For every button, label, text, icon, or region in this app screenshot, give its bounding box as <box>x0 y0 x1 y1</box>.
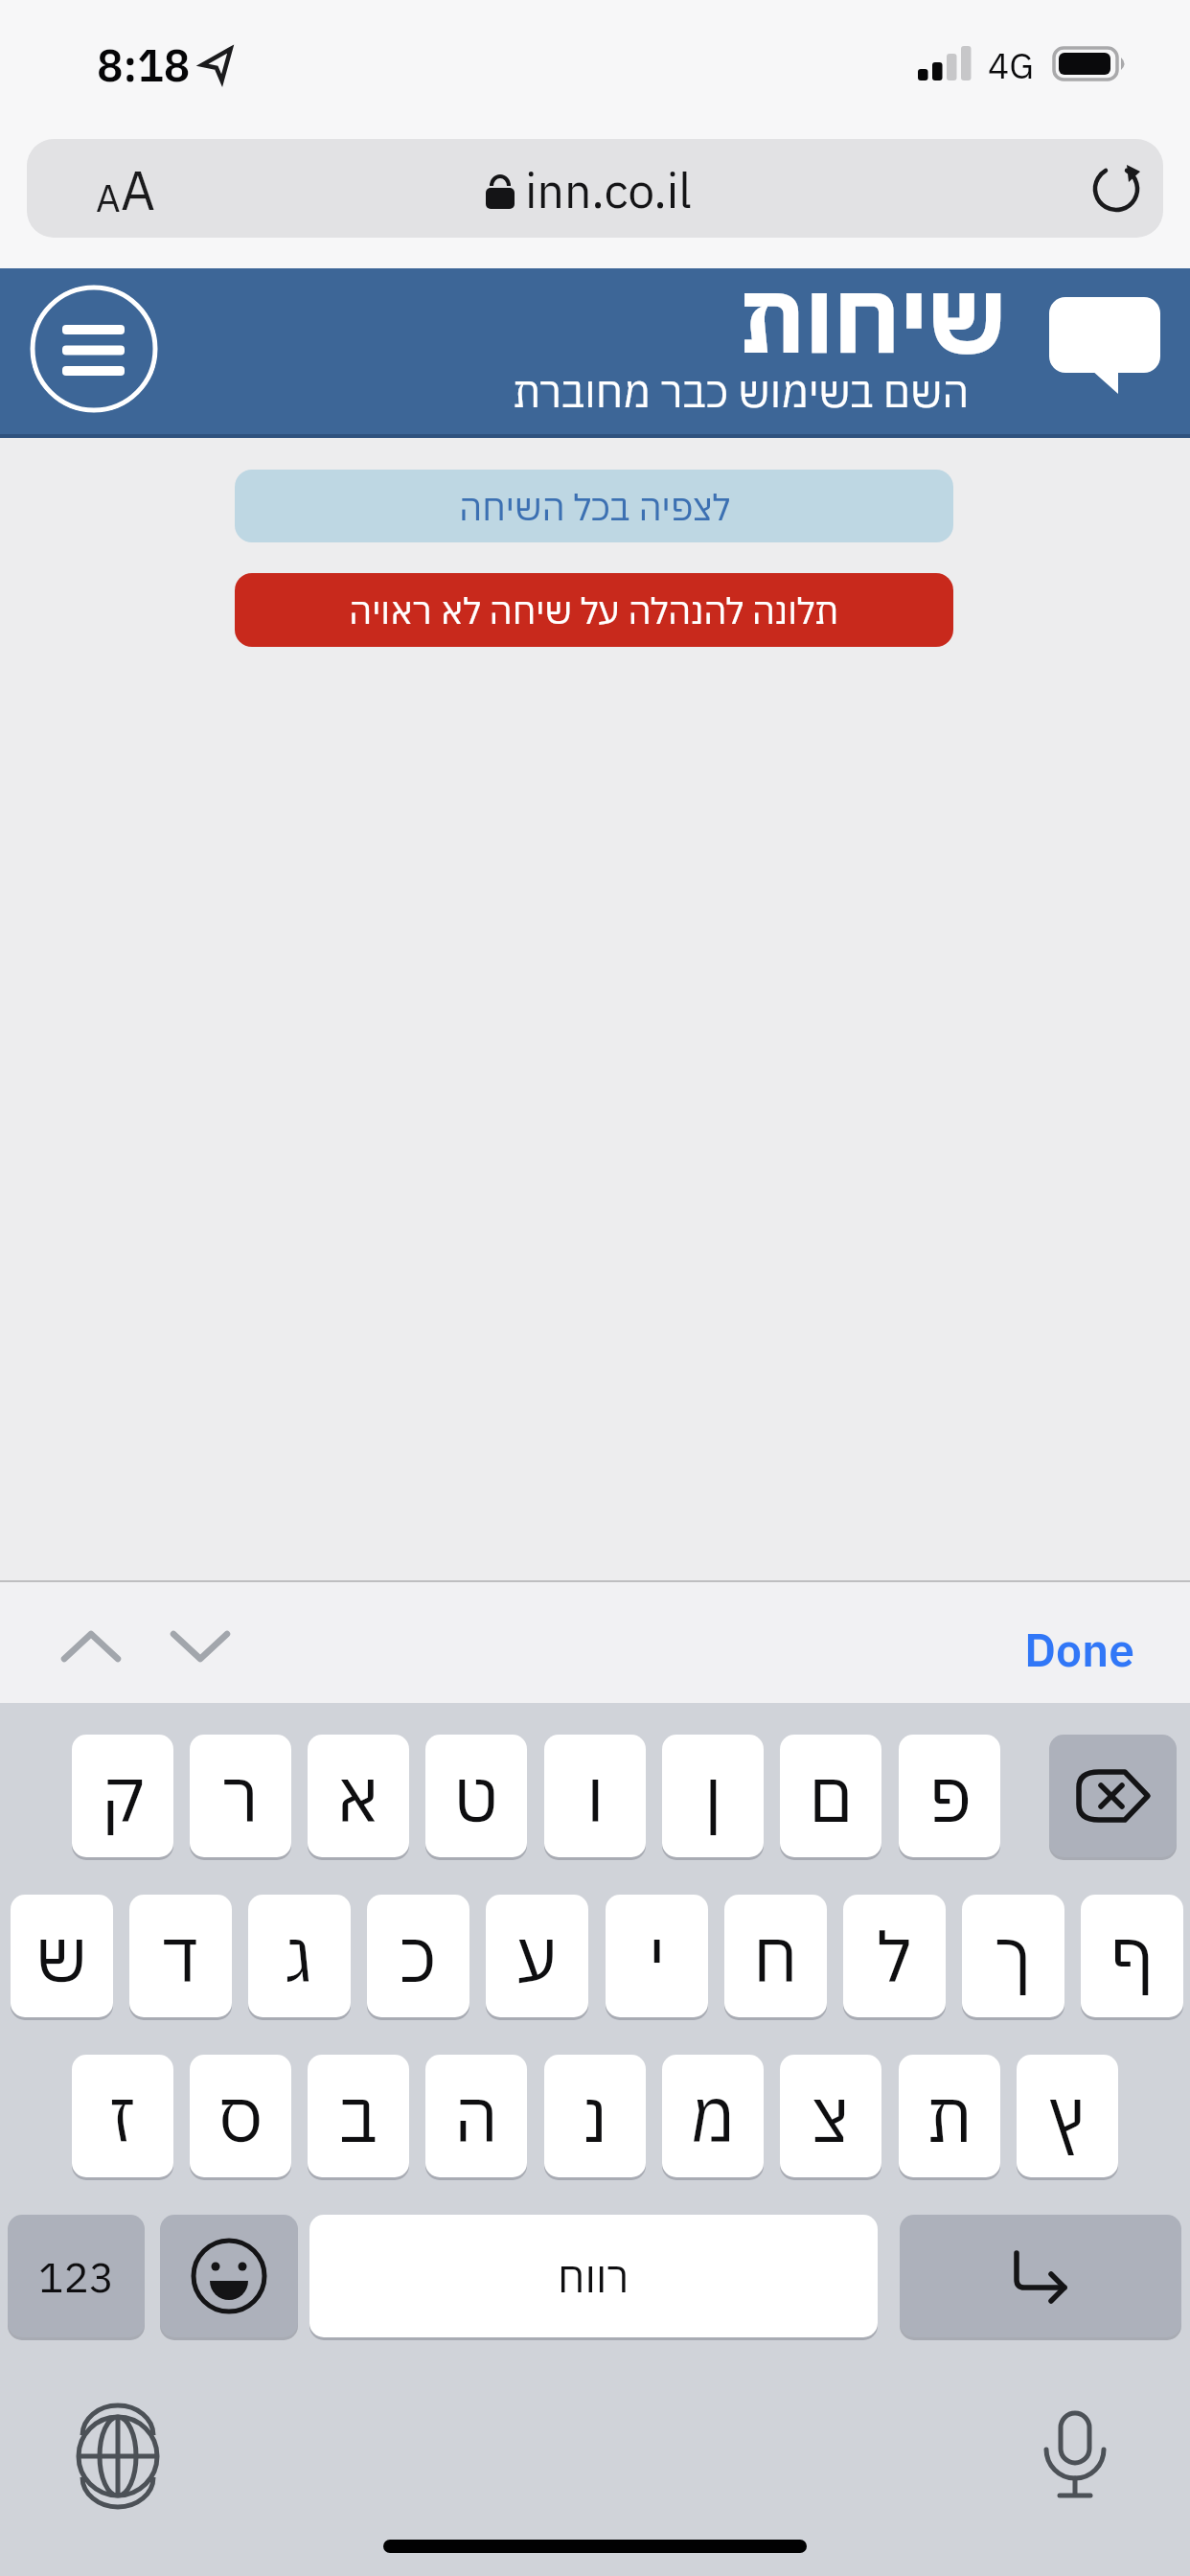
button[interactable]: ן <box>662 1735 764 1857</box>
staticText: כ <box>400 1911 437 2001</box>
staticText: A <box>121 155 155 222</box>
button[interactable] <box>1049 1735 1177 1857</box>
button[interactable] <box>1090 163 1142 215</box>
staticText: י <box>649 1911 666 2001</box>
button[interactable]: תלונה להנהלה על שיחה לא ראויה <box>235 573 953 647</box>
button[interactable]: ב <box>308 2055 409 2177</box>
staticText: א <box>336 1751 380 1841</box>
button[interactable]: 123 <box>8 2215 145 2337</box>
button[interactable]: ו <box>544 1735 646 1857</box>
button[interactable]: א <box>308 1735 409 1857</box>
button[interactable]: ה <box>425 2055 527 2177</box>
button[interactable]: ע <box>486 1895 588 2017</box>
button[interactable]: ז <box>72 2055 173 2177</box>
button[interactable] <box>27 139 1163 238</box>
staticText: 4G <box>988 42 1034 84</box>
button[interactable]: Done <box>996 1620 1135 1677</box>
button[interactable]: A <box>96 155 155 222</box>
staticText: inn.co.il <box>525 159 692 218</box>
staticText: ד <box>162 1911 199 2001</box>
staticText: ס <box>218 2071 263 2161</box>
button[interactable]: ק <box>72 1735 173 1857</box>
staticText: ב <box>339 2071 378 2161</box>
button[interactable]: כ <box>367 1895 469 2017</box>
button[interactable]: ש <box>11 1895 113 2017</box>
button[interactable] <box>76 2414 160 2498</box>
button[interactable]: ג <box>248 1895 351 2017</box>
button[interactable]: לצפיה בכל השיחה <box>235 470 953 542</box>
button[interactable]: רווח <box>309 2215 878 2337</box>
button[interactable]: ף <box>1081 1895 1183 2017</box>
staticText: ט <box>454 1751 499 1841</box>
staticText: תלונה להנהלה על שיחה לא ראויה <box>349 586 839 633</box>
staticText: השם בשימוש כבר מחוברת <box>513 364 970 419</box>
staticText: ץ <box>1049 2071 1086 2161</box>
staticText: ם <box>809 1751 854 1841</box>
staticText: צ <box>812 2071 850 2161</box>
button[interactable]: ר <box>190 1735 291 1857</box>
button[interactable]: ח <box>724 1895 827 2017</box>
button[interactable]: ך <box>962 1895 1064 2017</box>
staticText: ו <box>586 1751 605 1841</box>
button[interactable]: ת <box>899 2055 1000 2177</box>
button[interactable] <box>160 2215 298 2337</box>
staticText: ז <box>109 2071 136 2161</box>
staticText: 123 <box>38 2249 115 2304</box>
button[interactable]: נ <box>544 2055 646 2177</box>
button[interactable] <box>60 1627 233 1666</box>
staticText: ג <box>285 1911 314 2001</box>
button[interactable]: פ <box>899 1735 1000 1857</box>
staticText: ת <box>927 2071 973 2161</box>
button[interactable]: ד <box>129 1895 232 2017</box>
staticText: ף <box>1110 1911 1155 2001</box>
staticText: ל <box>878 1911 911 2001</box>
staticText: לצפיה בכל השיחה <box>459 483 730 530</box>
staticText: פ <box>928 1751 972 1841</box>
button[interactable]: ץ <box>1017 2055 1118 2177</box>
button[interactable] <box>30 285 158 413</box>
button[interactable]: ל <box>843 1895 946 2017</box>
staticText: נ <box>584 2071 607 2161</box>
staticText: ש <box>35 1911 88 2001</box>
button[interactable]: צ <box>780 2055 881 2177</box>
staticText: מ <box>690 2071 736 2161</box>
staticText: ח <box>753 1911 798 2001</box>
staticText: שיחות <box>740 252 1006 379</box>
button[interactable]: מ <box>662 2055 764 2177</box>
staticText: 8:18 <box>97 36 191 86</box>
staticText: A <box>96 172 121 222</box>
staticText: ר <box>222 1751 259 1841</box>
button[interactable]: ם <box>780 1735 881 1857</box>
button[interactable] <box>900 2215 1181 2337</box>
staticText: רווח <box>558 2249 629 2304</box>
button[interactable]: י <box>606 1895 708 2017</box>
staticText: ק <box>102 1751 144 1841</box>
staticText: ה <box>454 2071 498 2161</box>
staticText: ע <box>516 1911 558 2001</box>
button[interactable]: ס <box>190 2055 291 2177</box>
staticText: ך <box>995 1911 1032 2001</box>
button[interactable] <box>1041 2411 1110 2499</box>
staticText: Done <box>1024 1620 1135 1677</box>
button[interactable]: ט <box>425 1735 527 1857</box>
staticText: ן <box>704 1751 722 1841</box>
